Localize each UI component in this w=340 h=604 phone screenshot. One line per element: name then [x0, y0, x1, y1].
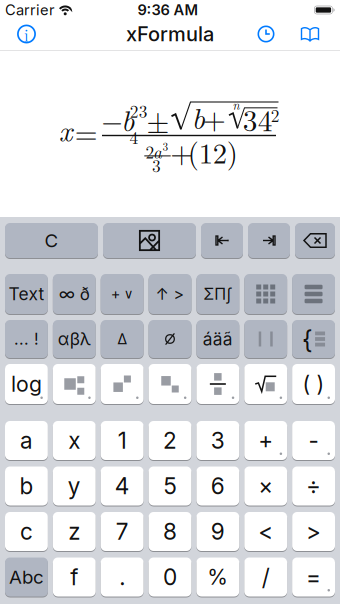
button[interactable]: ×	[244, 466, 287, 505]
button[interactable]: /	[244, 557, 287, 596]
staticText: 9	[211, 518, 225, 545]
staticText: Δ	[117, 330, 127, 348]
staticText: αβλ	[58, 328, 91, 349]
button[interactable]: =	[292, 557, 335, 596]
staticText: a	[20, 427, 33, 454]
button[interactable]: ÷	[292, 466, 335, 505]
button[interactable]: +	[244, 421, 287, 460]
button[interactable]: ( )	[292, 364, 335, 404]
staticText: ↑ >	[155, 284, 184, 304]
button[interactable]: 2	[149, 421, 191, 460]
button[interactable]: 4	[101, 466, 144, 505]
button[interactable]: Abc	[5, 557, 48, 596]
staticText: ( )	[303, 371, 325, 397]
button[interactable]: 8	[149, 512, 191, 551]
staticText: 3	[162, 138, 168, 154]
staticText: ÷	[306, 472, 321, 500]
staticText: a	[153, 139, 162, 163]
staticText: +	[203, 96, 226, 138]
button[interactable]: ∞ ð	[53, 274, 96, 314]
staticText: ∨	[124, 286, 134, 302]
button[interactable]: f	[53, 557, 96, 596]
staticText: áäã	[203, 328, 233, 349]
button[interactable]	[257, 25, 274, 42]
button[interactable]	[300, 27, 319, 41]
staticText: 4	[129, 124, 138, 149]
staticText: n	[232, 95, 239, 113]
button[interactable]: 1	[101, 421, 144, 460]
staticText: x	[59, 108, 73, 150]
button[interactable]: {	[292, 320, 335, 358]
button[interactable]: 3	[196, 421, 239, 460]
staticText: 3	[152, 153, 161, 177]
button[interactable]	[53, 364, 96, 404]
button[interactable]	[295, 223, 335, 258]
staticText: −b	[99, 98, 134, 140]
button[interactable]: log	[5, 364, 48, 404]
staticText: 8	[163, 518, 177, 545]
button[interactable]	[103, 223, 196, 258]
button[interactable]: i	[17, 24, 36, 43]
button[interactable]: c	[5, 512, 48, 551]
button[interactable]	[201, 223, 243, 258]
button[interactable]	[149, 364, 191, 404]
staticText: 0	[163, 563, 177, 591]
button[interactable]: a	[5, 421, 48, 460]
staticText: 2	[163, 427, 177, 454]
button[interactable]: 0	[149, 557, 191, 596]
button[interactable]	[101, 364, 144, 404]
staticText: ΣΠ∫	[203, 284, 232, 304]
button[interactable]: ↑ >	[149, 274, 191, 314]
button[interactable]: αβλ	[53, 320, 96, 358]
staticText: C	[44, 229, 58, 252]
button[interactable]	[244, 320, 287, 358]
button[interactable]: ... !	[5, 320, 48, 358]
button[interactable]: Δ	[101, 320, 144, 358]
staticText: log	[11, 371, 42, 397]
staticText: 1	[118, 427, 127, 454]
button[interactable]	[244, 364, 287, 404]
button[interactable]	[149, 320, 191, 358]
staticText: xFormula	[126, 22, 214, 46]
button[interactable]: Text	[5, 274, 48, 314]
button[interactable]: C	[5, 223, 98, 258]
staticText: c	[20, 518, 33, 545]
button[interactable]: ΣΠ∫	[196, 274, 239, 314]
button[interactable]: y	[53, 466, 96, 505]
staticText: +	[111, 285, 121, 303]
staticText: Abc	[9, 566, 44, 588]
staticText: 4	[115, 472, 130, 500]
button[interactable]: +	[101, 274, 144, 314]
staticText: y	[68, 472, 81, 500]
button[interactable]: z	[53, 512, 96, 551]
staticText: Carrier	[5, 1, 55, 19]
button[interactable]: -	[292, 421, 335, 460]
button[interactable]: >	[292, 512, 335, 551]
staticText: 6	[211, 472, 225, 500]
button[interactable]: 6	[196, 466, 239, 505]
button[interactable]: %	[196, 557, 239, 596]
button[interactable]: áäã	[196, 320, 239, 358]
button[interactable]: x	[53, 421, 96, 460]
staticText: 9:36 AM	[137, 1, 198, 19]
staticText: {	[302, 324, 313, 354]
staticText: (12)	[188, 131, 238, 172]
staticText: 2	[271, 102, 280, 127]
button[interactable]	[292, 274, 335, 314]
staticText: =	[75, 110, 98, 152]
staticText: 23	[130, 98, 148, 123]
button[interactable]: 5	[149, 466, 191, 505]
button[interactable]: b	[5, 466, 48, 505]
button[interactable]: 7	[101, 512, 144, 551]
button[interactable]	[248, 223, 290, 258]
staticText: Text	[8, 283, 44, 304]
button[interactable]: 9	[196, 512, 239, 551]
staticText: /	[262, 563, 270, 591]
button[interactable]	[196, 364, 239, 404]
button[interactable]	[244, 274, 287, 314]
staticText: ... !	[14, 329, 39, 349]
button[interactable]: .	[101, 557, 144, 596]
staticText: z	[68, 518, 80, 545]
staticText: +	[170, 130, 193, 172]
button[interactable]: <	[244, 512, 287, 551]
